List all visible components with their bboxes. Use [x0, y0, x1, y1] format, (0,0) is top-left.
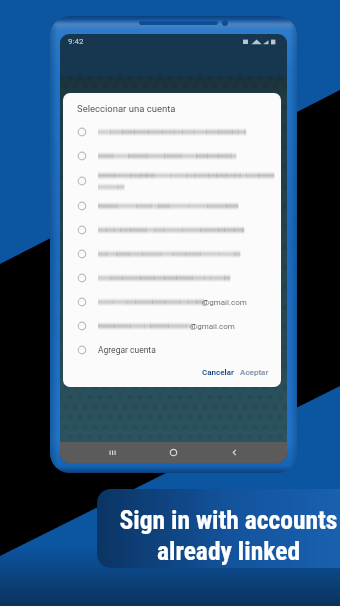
button[interactable]: @gmail.com	[63, 290, 281, 314]
button[interactable]	[63, 168, 281, 194]
button[interactable]: Back	[222, 442, 247, 463]
button[interactable]	[63, 194, 281, 218]
staticText: @gmail.com	[202, 298, 247, 307]
button[interactable]	[63, 144, 281, 168]
button[interactable]: Sign in with accounts already linked	[97, 489, 340, 568]
button[interactable]	[63, 120, 281, 144]
button[interactable]: Agregar cuenta	[63, 338, 281, 362]
staticText: Aceptar	[240, 368, 269, 377]
button[interactable]: Home	[161, 442, 186, 463]
button[interactable]	[63, 218, 281, 242]
button[interactable]: Aceptar	[237, 365, 272, 380]
staticText: Cancelar	[202, 368, 234, 377]
button[interactable]: Recent apps	[100, 442, 125, 463]
staticText: Sign in with accounts already linked	[117, 505, 340, 566]
staticText: 9:42	[68, 37, 84, 46]
staticText: @gmail.com	[190, 322, 235, 331]
button[interactable]	[63, 266, 281, 290]
button[interactable]: Cancelar	[199, 365, 237, 380]
button[interactable]: @gmail.com	[63, 314, 281, 338]
staticText: Agregar cuenta	[98, 345, 156, 355]
button[interactable]	[63, 242, 281, 266]
staticText: Seleccionar una cuenta	[77, 103, 176, 114]
